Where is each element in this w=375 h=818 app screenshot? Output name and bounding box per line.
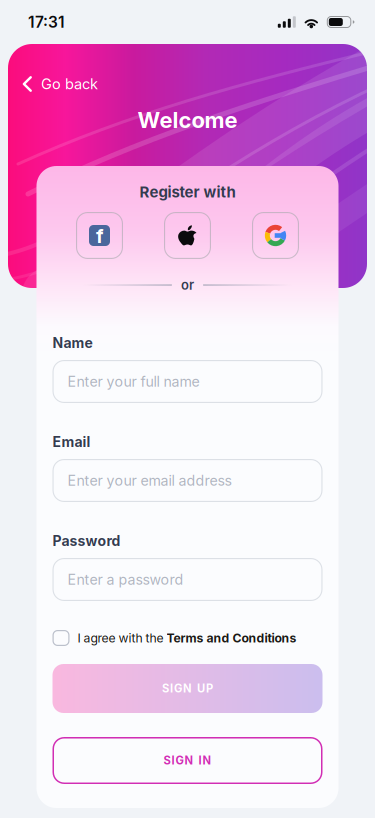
button[interactable]: I agree with the Terms and Conditions bbox=[36, 629, 338, 647]
button[interactable]: Enter a password bbox=[52, 558, 322, 601]
staticText: Enter your full name bbox=[67, 373, 199, 390]
staticText: Welcome bbox=[137, 107, 237, 133]
button[interactable]: Enter your email address bbox=[52, 459, 322, 502]
staticText: S I G N I N bbox=[163, 754, 211, 767]
staticText: Password bbox=[52, 532, 120, 549]
button[interactable]: Go back bbox=[0, 73, 375, 95]
staticText: 17:31 bbox=[28, 13, 65, 31]
staticText: f bbox=[96, 224, 104, 247]
staticText: S I G N U P bbox=[162, 682, 213, 695]
staticText: Enter your email address bbox=[67, 472, 231, 489]
button[interactable]: S I G N I N bbox=[52, 737, 322, 784]
staticText: or bbox=[181, 277, 194, 293]
staticText: Enter a password bbox=[67, 571, 183, 588]
staticText: Email bbox=[52, 433, 90, 450]
staticText: Register with bbox=[139, 183, 235, 201]
button[interactable]: Register with Facebook bbox=[76, 212, 123, 259]
button[interactable]: Register with Apple bbox=[164, 212, 211, 259]
staticText: I agree with the Terms and Conditions bbox=[77, 631, 296, 645]
button[interactable]: Register with Google bbox=[252, 212, 299, 259]
button[interactable]: S I G N U P bbox=[52, 664, 322, 713]
button[interactable]: Enter your full name bbox=[52, 360, 322, 403]
staticText: Name bbox=[52, 334, 92, 351]
staticText: Go back bbox=[41, 75, 98, 93]
